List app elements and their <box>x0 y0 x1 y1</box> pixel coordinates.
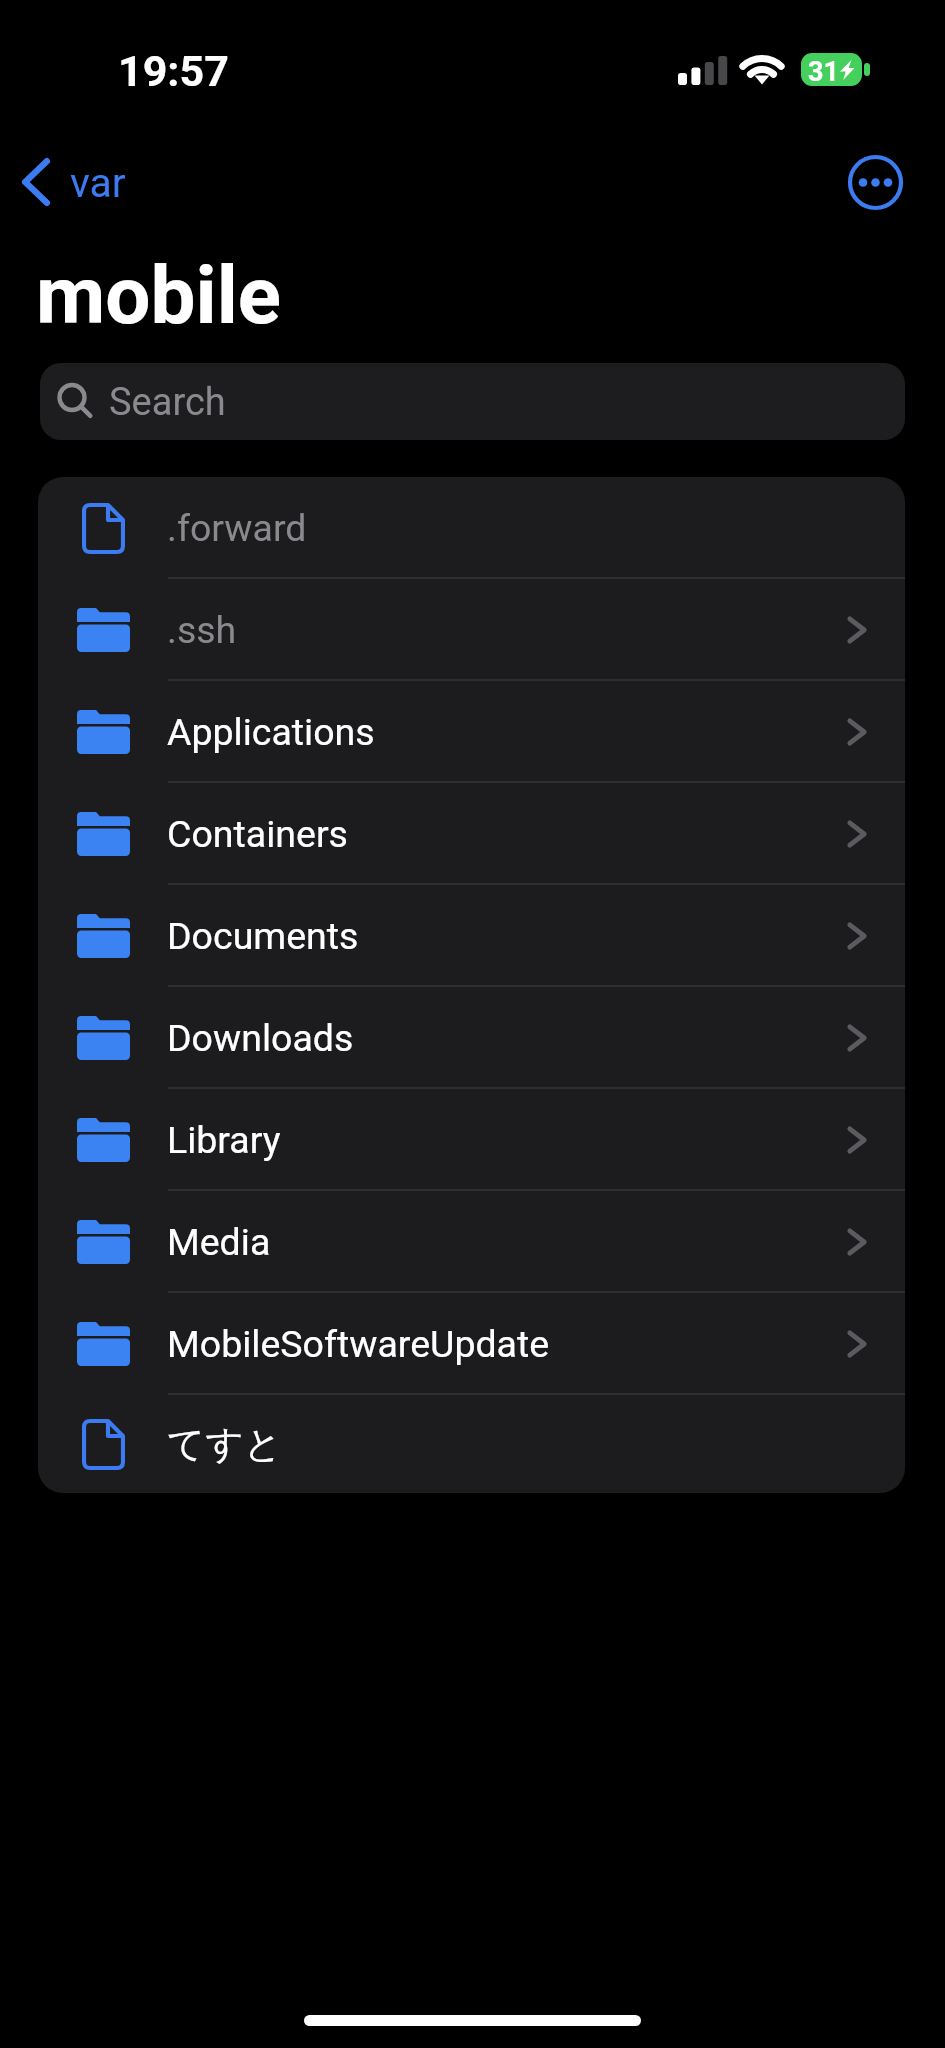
staticText: Downloads <box>167 1016 354 1060</box>
button[interactable]: Containers <box>38 783 905 885</box>
staticText: Applications <box>167 710 375 754</box>
staticText: MobileSoftwareUpdate <box>167 1322 550 1366</box>
button[interactable]: .forward <box>38 477 905 579</box>
staticText: Library <box>167 1118 281 1162</box>
button[interactable]: Applications <box>38 681 905 783</box>
staticText: 19:57 <box>118 46 229 96</box>
button[interactable]: Documents <box>38 885 905 987</box>
staticText: mobile <box>36 249 281 343</box>
button[interactable]: てすと <box>38 1395 905 1493</box>
staticText: .forward <box>167 506 307 550</box>
staticText: Search <box>109 380 226 425</box>
staticText: Documents <box>167 914 359 958</box>
button[interactable]: Search <box>40 363 905 440</box>
staticText: 31 <box>808 56 839 86</box>
button[interactable]: More options <box>842 149 909 216</box>
staticText: てすと <box>167 1421 283 1468</box>
button[interactable]: Back to var <box>10 146 142 218</box>
button[interactable]: Library <box>38 1089 905 1191</box>
button[interactable]: .ssh <box>38 579 905 681</box>
staticText: .ssh <box>167 608 237 652</box>
staticText: var <box>70 159 126 207</box>
button[interactable]: Downloads <box>38 987 905 1089</box>
staticText: Media <box>167 1220 271 1264</box>
button[interactable]: MobileSoftwareUpdate <box>38 1293 905 1395</box>
staticText: Containers <box>167 812 348 856</box>
button[interactable]: Media <box>38 1191 905 1293</box>
